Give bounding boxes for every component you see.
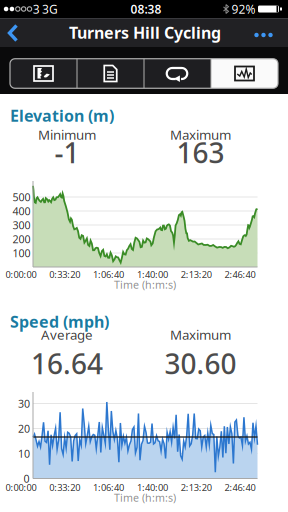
staticText: 0:00:00: [5, 268, 36, 281]
staticText: 2:13:20: [181, 481, 212, 494]
staticText: 163: [176, 134, 224, 171]
staticText: Maximum: [170, 126, 231, 143]
staticText: 1:06:40: [93, 481, 124, 494]
staticText: Time (h:m:s): [114, 277, 176, 292]
staticText: Average: [41, 326, 93, 343]
staticText: Minimum: [38, 126, 96, 143]
staticText: 92%: [231, 1, 255, 17]
staticText: 1:40:00: [137, 268, 168, 281]
staticText: 2:46:40: [224, 268, 255, 281]
staticText: 30: [18, 396, 30, 411]
staticText: 0:00:00: [5, 481, 36, 494]
staticText: 500: [12, 190, 30, 204]
button[interactable]: Laps: [144, 59, 211, 88]
staticText: 100: [12, 246, 30, 260]
staticText: 10: [18, 446, 30, 461]
staticText: 08:38: [130, 1, 161, 17]
button[interactable]: Map: [10, 59, 77, 88]
button[interactable]: More: [249, 25, 277, 45]
staticText: Speed (mph): [10, 311, 109, 332]
staticText: 1:06:40: [93, 268, 124, 281]
staticText: Time (h:m:s): [114, 490, 176, 505]
button[interactable]: Charts: [211, 59, 278, 88]
staticText: 20: [18, 421, 30, 436]
button[interactable]: Details: [77, 59, 144, 88]
staticText: 2:13:20: [181, 268, 212, 281]
staticText: Elevation (m): [10, 105, 114, 126]
staticText: 1:40:00: [137, 481, 168, 494]
staticText: Maximum: [170, 326, 231, 343]
button[interactable]: Back: [6, 22, 20, 43]
staticText: 0: [23, 471, 29, 486]
staticText: 30.60: [164, 345, 236, 382]
staticText: 0:33:20: [49, 481, 80, 494]
staticText: Turners Hill Cycling: [69, 22, 221, 43]
staticText: -1: [54, 134, 79, 171]
staticText: 200: [12, 232, 30, 246]
staticText: 3: [33, 1, 40, 17]
staticText: 400: [12, 204, 30, 218]
staticText: 3G: [42, 1, 58, 17]
staticText: 300: [12, 218, 30, 232]
staticText: 0:33:20: [49, 268, 80, 281]
staticText: 2:46:40: [224, 481, 255, 494]
staticText: 16.64: [31, 345, 103, 382]
